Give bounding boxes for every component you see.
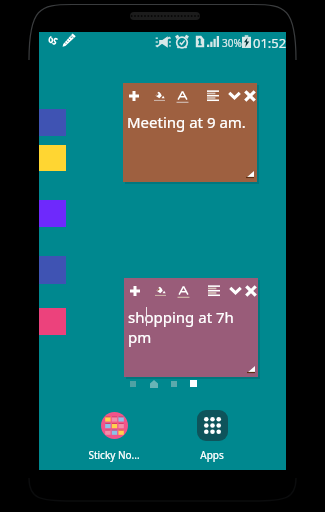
button[interactable]: Sticky No... [82,412,146,462]
button[interactable]: Close [243,283,259,299]
button[interactable]: Fill colour [151,87,168,104]
staticText: shopping at 7h pm [128,307,254,347]
staticText: Apps [200,448,224,462]
button[interactable]: Align [204,87,222,105]
button[interactable]: Fill colour [152,282,169,299]
button[interactable]: Text style [174,282,193,301]
staticText: 01:52 [253,34,287,52]
button[interactable]: Text style [173,87,192,106]
button[interactable]: Handwriting [47,35,59,47]
button[interactable]: Add [127,283,143,299]
button[interactable]: Edit [62,33,76,47]
button[interactable]: More [227,89,242,104]
button[interactable]: Add [123,83,257,182]
staticText: 30% [222,36,242,50]
staticText: Sticky No... [88,448,140,462]
button[interactable]: Align [205,282,223,300]
button[interactable]: Apps [180,410,244,462]
button[interactable]: Add [126,88,142,104]
button[interactable]: Add [124,278,258,377]
staticText: Meeting at 9 am. [127,112,246,132]
button[interactable]: More [228,284,243,299]
button[interactable]: Close [242,88,258,104]
